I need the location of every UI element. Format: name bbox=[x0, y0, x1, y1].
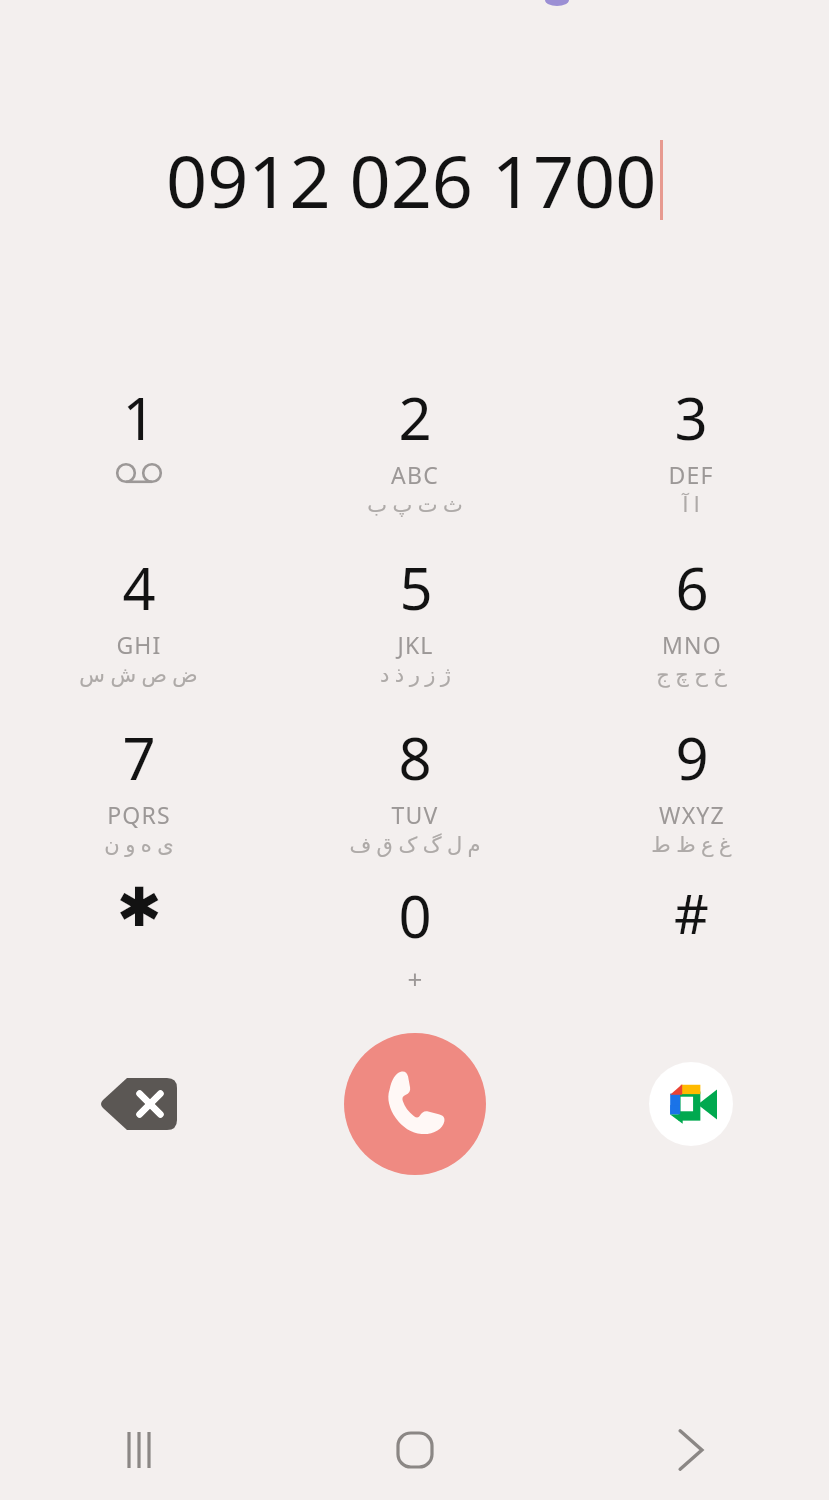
button[interactable]: Home bbox=[277, 1400, 553, 1500]
staticText: 4 bbox=[122, 548, 156, 627]
staticText: + bbox=[407, 961, 424, 996]
staticText: 9 bbox=[675, 718, 709, 797]
staticText: ث ت پ ب bbox=[367, 490, 463, 519]
staticText: ABC bbox=[391, 459, 439, 490]
button[interactable]: 7 bbox=[0, 700, 277, 870]
button[interactable]: 2 bbox=[277, 360, 553, 530]
staticText: PQRS bbox=[107, 799, 171, 830]
button[interactable]: 1 bbox=[0, 360, 277, 530]
staticText: خ ح چ ج bbox=[656, 660, 727, 689]
button[interactable]: Recents bbox=[0, 1400, 277, 1500]
staticText: ژ ز ر ذ د bbox=[380, 660, 451, 689]
staticText: GHI bbox=[116, 629, 162, 660]
button[interactable]: 5 bbox=[277, 530, 553, 700]
button[interactable]: 3 bbox=[553, 360, 829, 530]
staticText: DEF bbox=[668, 459, 714, 490]
staticText: 7 bbox=[122, 718, 156, 797]
staticText: 0 bbox=[398, 876, 432, 955]
staticText: ی ه و ن bbox=[104, 830, 174, 859]
button[interactable]: 6 bbox=[553, 530, 829, 700]
staticText: MNO bbox=[662, 629, 722, 660]
staticText: # bbox=[674, 876, 709, 950]
staticText: JKL bbox=[397, 629, 434, 660]
staticText: ا آ bbox=[682, 490, 700, 519]
staticText: 1 bbox=[122, 378, 156, 457]
staticText: 0912 026 1700 bbox=[166, 131, 657, 229]
button[interactable]: 9 bbox=[553, 700, 829, 870]
button[interactable]: Video call with Meet bbox=[649, 1062, 733, 1146]
button[interactable]: Back bbox=[553, 1400, 829, 1500]
button[interactable]: ✱ bbox=[0, 870, 277, 1000]
staticText: 8 bbox=[398, 718, 432, 797]
staticText: 3 bbox=[674, 378, 708, 457]
button[interactable]: 0 bbox=[277, 870, 553, 1000]
staticText: غ ع ظ ط bbox=[651, 830, 732, 859]
staticText: WXYZ bbox=[659, 799, 725, 830]
button[interactable]: Call bbox=[344, 1033, 486, 1175]
staticText: ض ص ش س bbox=[79, 660, 198, 689]
staticText: 6 bbox=[675, 548, 709, 627]
button[interactable]: 4 bbox=[0, 530, 277, 700]
staticText: 2 bbox=[398, 378, 432, 457]
staticText: TUV bbox=[391, 799, 439, 830]
button[interactable]: 8 bbox=[277, 700, 553, 870]
button[interactable]: Backspace bbox=[91, 1056, 187, 1152]
staticText: م ل گ ک ق ف bbox=[349, 830, 481, 859]
button[interactable]: # bbox=[553, 870, 829, 1000]
staticText: ✱ bbox=[116, 876, 162, 939]
staticText: 5 bbox=[399, 548, 433, 627]
